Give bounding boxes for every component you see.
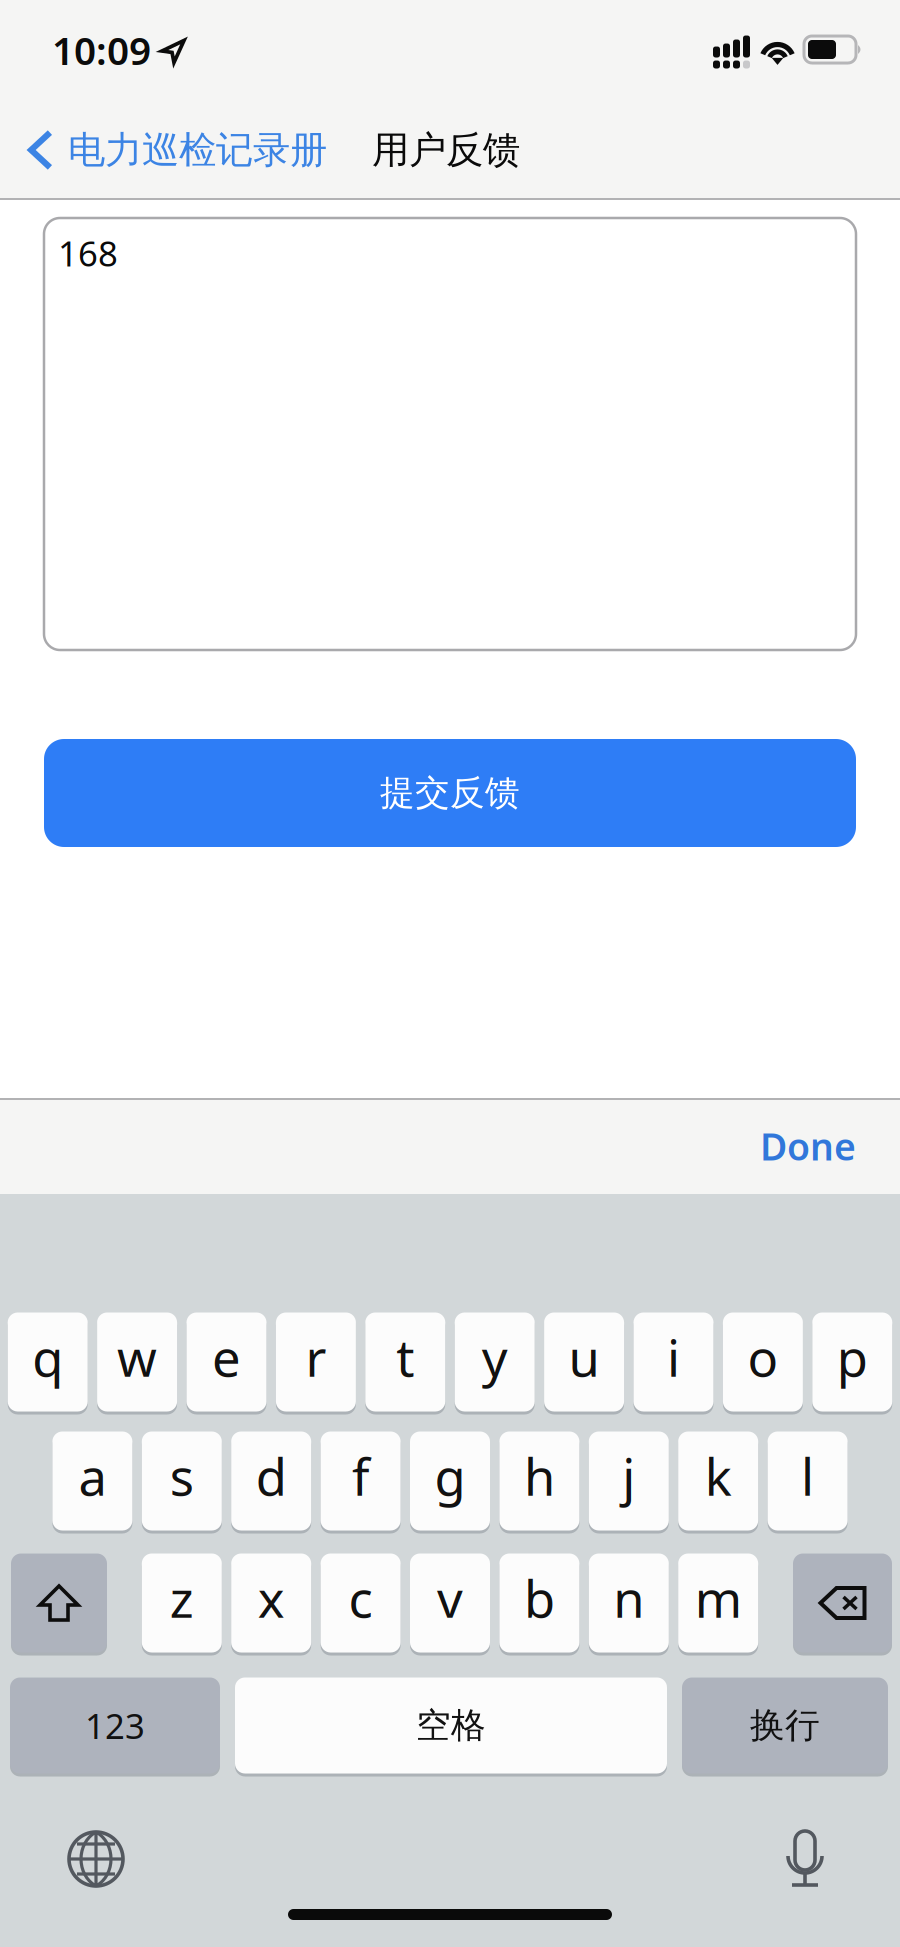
button[interactable]: 123: [10, 1676, 220, 1775]
staticText: q: [32, 1323, 63, 1391]
button[interactable]: r: [276, 1311, 356, 1413]
button[interactable]: m: [678, 1552, 758, 1654]
button[interactable]: u: [544, 1311, 624, 1413]
staticText: n: [613, 1564, 644, 1632]
staticText: 10:09: [52, 24, 151, 76]
staticText: 提交反馈: [380, 772, 520, 814]
button[interactable]: l: [768, 1430, 848, 1532]
staticText: m: [695, 1564, 742, 1632]
button[interactable]: i: [633, 1311, 713, 1413]
button[interactable]: w: [97, 1311, 177, 1413]
staticText: j: [622, 1442, 635, 1510]
button[interactable]: c: [321, 1552, 401, 1654]
button[interactable]: Switch keyboard: [67, 1830, 125, 1888]
button[interactable]: o: [723, 1311, 803, 1413]
button[interactable]: [11, 1552, 107, 1654]
staticText: w: [117, 1323, 157, 1391]
staticText: v: [437, 1564, 463, 1632]
button[interactable]: h: [499, 1430, 579, 1532]
button[interactable]: d: [231, 1430, 311, 1532]
button[interactable]: b: [499, 1552, 579, 1654]
button[interactable]: g: [410, 1430, 490, 1532]
staticText: y: [482, 1323, 508, 1391]
button[interactable]: p: [812, 1311, 892, 1413]
button[interactable]: 电力巡检记录册: [0, 115, 327, 185]
staticText: 168: [58, 230, 118, 276]
staticText: t: [396, 1323, 414, 1391]
staticText: l: [801, 1442, 814, 1510]
staticText: o: [747, 1323, 778, 1391]
staticText: 空格: [416, 1704, 486, 1747]
button[interactable]: 换行: [682, 1676, 888, 1775]
staticText: k: [705, 1442, 732, 1510]
staticText: 换行: [750, 1704, 820, 1747]
staticText: i: [667, 1323, 680, 1391]
staticText: s: [170, 1442, 194, 1510]
staticText: h: [524, 1442, 555, 1510]
button[interactable]: n: [589, 1552, 669, 1654]
staticText: c: [349, 1564, 373, 1632]
staticText: b: [524, 1564, 555, 1632]
button[interactable]: k: [678, 1430, 758, 1532]
staticText: f: [352, 1442, 369, 1510]
button[interactable]: 提交反馈: [0, 739, 900, 847]
button[interactable]: Done: [760, 1107, 900, 1185]
button[interactable]: q: [8, 1311, 88, 1413]
button[interactable]: f: [321, 1430, 401, 1532]
staticText: g: [434, 1442, 465, 1510]
staticText: 123: [85, 1702, 145, 1748]
staticText: z: [170, 1564, 194, 1632]
staticText: x: [258, 1564, 285, 1632]
staticText: 电力巡检记录册: [68, 127, 327, 173]
button[interactable]: x: [231, 1552, 311, 1654]
button[interactable]: Dictation: [783, 1827, 827, 1889]
staticText: e: [212, 1323, 241, 1391]
staticText: 用户反馈: [372, 127, 520, 173]
staticText: d: [256, 1442, 287, 1510]
button[interactable]: j: [589, 1430, 669, 1532]
button[interactable]: z: [142, 1552, 222, 1654]
button[interactable]: s: [142, 1430, 222, 1532]
button[interactable]: e: [186, 1311, 266, 1413]
staticText: Done: [760, 1121, 856, 1171]
staticText: u: [569, 1323, 600, 1391]
staticText: a: [78, 1442, 106, 1510]
staticText: r: [305, 1323, 326, 1391]
button[interactable]: t: [365, 1311, 445, 1413]
button[interactable]: v: [410, 1552, 490, 1654]
button[interactable]: y: [455, 1311, 535, 1413]
button[interactable]: [793, 1552, 892, 1654]
button[interactable]: a: [52, 1430, 132, 1532]
staticText: p: [837, 1323, 868, 1391]
button[interactable]: 空格: [235, 1676, 667, 1775]
